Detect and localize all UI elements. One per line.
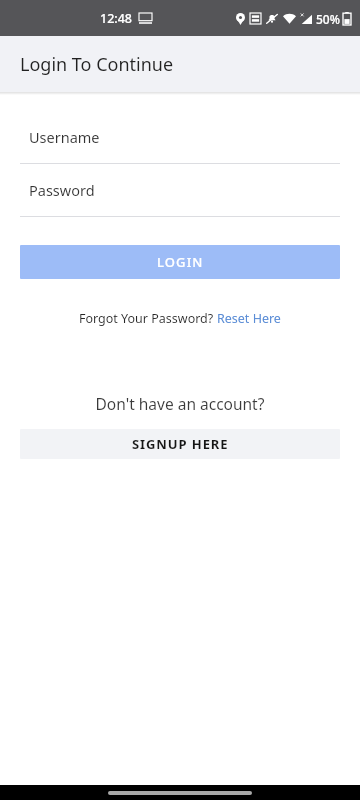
- staticText: 12:48: [100, 10, 133, 27]
- button[interactable]: Username: [0, 111, 360, 164]
- staticText: Forgot Your Password?: [79, 310, 217, 327]
- button[interactable]: LOGIN: [20, 245, 340, 279]
- staticText: Don't have an account?: [0, 393, 360, 414]
- staticText: 50%: [316, 11, 340, 27]
- staticText: SIGNUP HERE: [132, 435, 229, 453]
- staticText: Login To Continue: [20, 52, 174, 77]
- staticText: Reset Here: [217, 310, 281, 327]
- button[interactable]: Password: [0, 164, 360, 217]
- staticText: Password: [29, 180, 95, 200]
- staticText: LOGIN: [157, 253, 204, 271]
- button[interactable]: Reset Here: [217, 310, 281, 327]
- button[interactable]: SIGNUP HERE: [20, 429, 340, 459]
- staticText: Username: [29, 127, 100, 147]
